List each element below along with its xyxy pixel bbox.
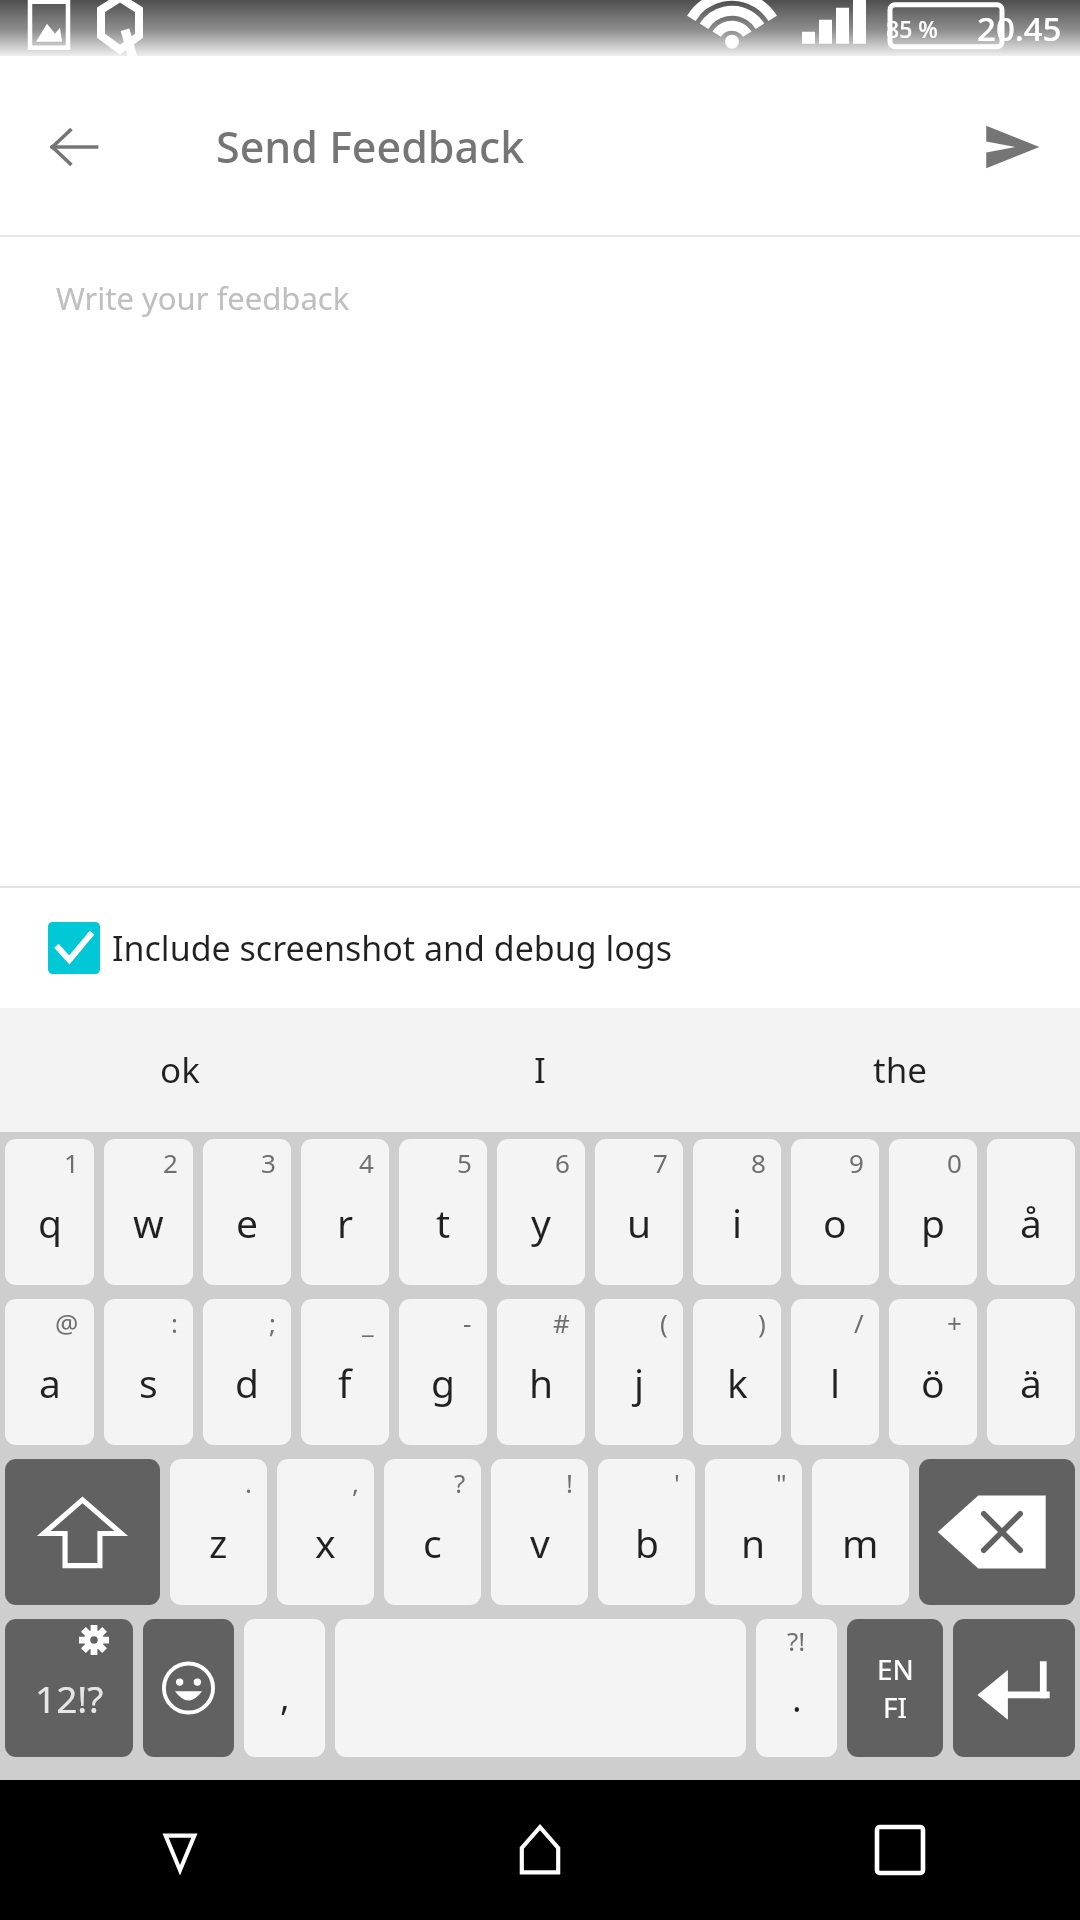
- button[interactable]: ,: [277, 1459, 374, 1605]
- staticText: 20.45: [977, 6, 1062, 51]
- button[interactable]: m: [812, 1459, 909, 1605]
- button[interactable]: ': [598, 1459, 695, 1605]
- staticText: -: [463, 1305, 472, 1340]
- button[interactable]: ": [705, 1459, 802, 1605]
- staticText: ,: [280, 1672, 290, 1721]
- button[interactable]: (: [595, 1299, 683, 1445]
- button[interactable]: ,: [244, 1619, 325, 1757]
- staticText: w: [133, 1196, 164, 1249]
- button[interactable]: Emoji: [143, 1619, 234, 1757]
- staticText: Include screenshot and debug logs: [112, 925, 673, 971]
- staticText: +: [947, 1305, 962, 1340]
- staticText: Send Feedback: [216, 117, 525, 176]
- staticText: ä: [1020, 1356, 1042, 1409]
- staticText: ": [776, 1465, 787, 1500]
- staticText: v: [530, 1516, 550, 1569]
- staticText: ,: [352, 1465, 359, 1500]
- staticText: p: [921, 1196, 945, 1249]
- staticText: o: [823, 1196, 847, 1249]
- button[interactable]: ok: [0, 1008, 360, 1132]
- button[interactable]: Language: [847, 1619, 943, 1757]
- button[interactable]: ): [693, 1299, 781, 1445]
- staticText: ;: [269, 1305, 276, 1340]
- staticText: EN: [877, 1650, 914, 1688]
- staticText: 3: [261, 1145, 276, 1180]
- button[interactable]: 8: [693, 1139, 781, 1285]
- staticText: ö: [921, 1356, 945, 1409]
- staticText: j: [634, 1356, 645, 1409]
- button[interactable]: -: [399, 1299, 487, 1445]
- staticText: f: [338, 1356, 352, 1409]
- button[interactable]: 3: [203, 1139, 291, 1285]
- staticText: s: [139, 1356, 158, 1409]
- staticText: the: [873, 1046, 928, 1094]
- button[interactable]: _: [301, 1299, 389, 1445]
- staticText: t: [436, 1196, 451, 1249]
- button[interactable]: 9: [791, 1139, 879, 1285]
- staticText: i: [732, 1196, 743, 1249]
- staticText: y: [531, 1196, 551, 1249]
- staticText: å: [1020, 1196, 1042, 1249]
- button[interactable]: 1: [5, 1139, 94, 1285]
- staticText: x: [315, 1516, 336, 1569]
- button[interactable]: !: [491, 1459, 588, 1605]
- button[interactable]: @: [5, 1299, 94, 1445]
- staticText: u: [627, 1196, 652, 1249]
- staticText: m: [842, 1516, 879, 1569]
- button[interactable]: 6: [497, 1139, 585, 1285]
- staticText: q: [38, 1196, 62, 1249]
- button[interactable]: Backspace: [919, 1459, 1075, 1605]
- staticText: a: [39, 1356, 61, 1409]
- button[interactable]: ;: [203, 1299, 291, 1445]
- button[interactable]: +: [889, 1299, 977, 1445]
- staticText: (: [660, 1305, 668, 1340]
- staticText: @: [55, 1305, 79, 1340]
- button[interactable]: Back: [0, 1780, 360, 1920]
- button[interactable]: Include screenshot and debug logs: [0, 888, 1080, 1008]
- staticText: r: [337, 1196, 354, 1249]
- button[interactable]: Back: [36, 109, 112, 185]
- button[interactable]: Enter: [953, 1619, 1075, 1757]
- button[interactable]: 2: [104, 1139, 193, 1285]
- staticText: /: [854, 1305, 864, 1340]
- staticText: FI: [883, 1688, 908, 1726]
- button[interactable]: 7: [595, 1139, 683, 1285]
- staticText: 5: [457, 1145, 472, 1180]
- staticText: z: [209, 1516, 228, 1569]
- staticText: g: [431, 1356, 455, 1409]
- button[interactable]: 4: [301, 1139, 389, 1285]
- button[interactable]: Send: [972, 107, 1052, 187]
- button[interactable]: ä: [987, 1299, 1075, 1445]
- staticText: c: [423, 1516, 442, 1569]
- staticText: b: [635, 1516, 659, 1569]
- staticText: .: [792, 1674, 802, 1723]
- button[interactable]: .: [170, 1459, 267, 1605]
- staticText: h: [529, 1356, 554, 1409]
- button[interactable]: ?!: [756, 1619, 837, 1757]
- staticText: n: [741, 1516, 766, 1569]
- staticText: 9: [849, 1145, 864, 1180]
- staticText: :: [171, 1305, 178, 1340]
- button[interactable]: 5: [399, 1139, 487, 1285]
- button[interactable]: the: [720, 1008, 1080, 1132]
- button[interactable]: #: [497, 1299, 585, 1445]
- staticText: Write your feedback: [56, 277, 350, 319]
- staticText: 2: [163, 1145, 178, 1180]
- button[interactable]: I: [360, 1008, 720, 1132]
- staticText: ok: [160, 1046, 200, 1094]
- button[interactable]: Symbols: [5, 1619, 133, 1757]
- button[interactable]: Home: [360, 1780, 720, 1920]
- button[interactable]: 0: [889, 1139, 977, 1285]
- button[interactable]: å: [987, 1139, 1075, 1285]
- button[interactable]: Recents: [720, 1780, 1080, 1920]
- button[interactable]: Shift: [5, 1459, 160, 1605]
- staticText: 7: [653, 1145, 668, 1180]
- button[interactable]: :: [104, 1299, 193, 1445]
- staticText: 85 %: [886, 13, 938, 44]
- button[interactable]: ?: [384, 1459, 481, 1605]
- staticText: e: [236, 1196, 258, 1249]
- staticText: ?!: [787, 1623, 806, 1658]
- staticText: ': [674, 1465, 680, 1500]
- button[interactable]: /: [791, 1299, 879, 1445]
